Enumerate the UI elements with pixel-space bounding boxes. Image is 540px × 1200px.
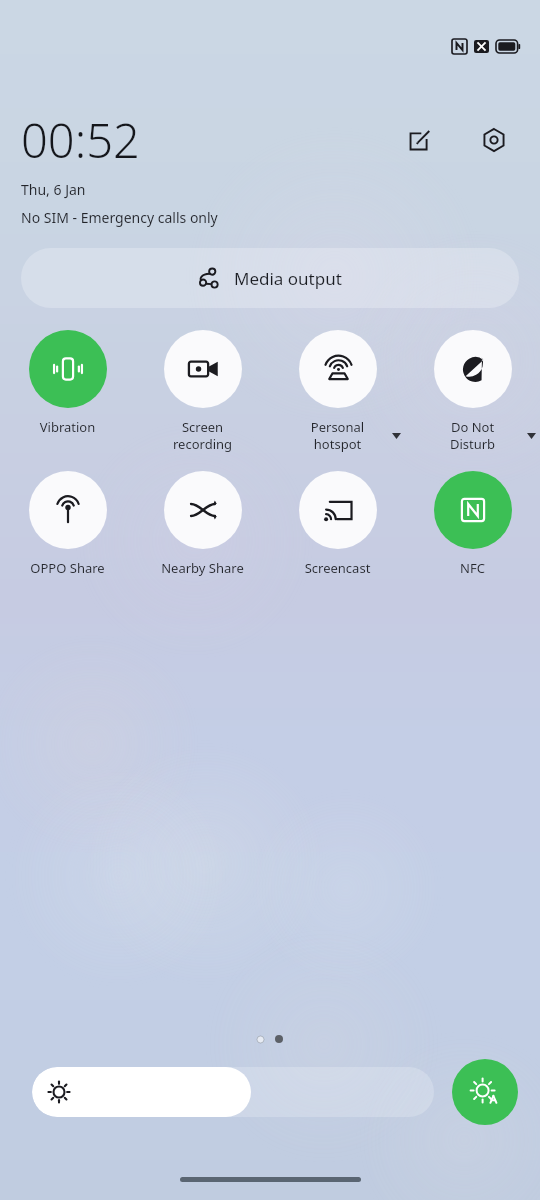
button[interactable]: Vibration (0, 330, 135, 436)
staticText: Screen recording (137, 418, 268, 453)
staticText: Screencast (272, 559, 403, 577)
staticText: Vibration (2, 418, 133, 436)
button[interactable]: Media output (21, 248, 519, 308)
staticText: Media output (234, 267, 342, 290)
button[interactable]: Nearby Share (135, 471, 270, 577)
button[interactable]: Do Not Disturb (405, 330, 540, 453)
button[interactable]: Screen recording (135, 330, 270, 453)
button[interactable]: Personal hotspot (270, 330, 405, 453)
staticText: No SIM - Emergency calls only (21, 208, 218, 227)
staticText: OPPO Share (2, 559, 133, 577)
staticText: Personal hotspot (272, 418, 403, 453)
button[interactable]: Auto brightness (452, 1059, 518, 1125)
button[interactable]: Settings (472, 118, 516, 162)
staticText: Do Not Disturb (407, 418, 538, 453)
staticText: Thu, 6 Jan (21, 180, 86, 199)
staticText: Nearby Share (137, 559, 268, 577)
staticText: NFC (407, 559, 538, 577)
button[interactable]: Screencast (270, 471, 405, 577)
staticText: 00:52 (21, 108, 140, 172)
button[interactable]: NFC (405, 471, 540, 577)
button[interactable]: Edit tiles (398, 118, 442, 162)
button[interactable]: OPPO Share (0, 471, 135, 577)
button[interactable]: Brightness (32, 1067, 434, 1117)
